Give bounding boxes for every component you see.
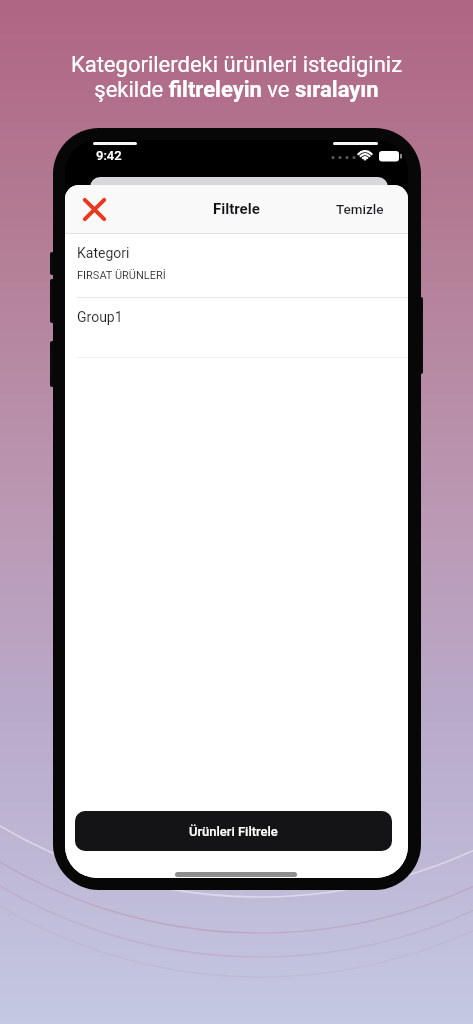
staticText: Temizle	[336, 201, 384, 217]
staticText: Kategorilerdeki ürünleri istediginiz şek…	[0, 52, 473, 103]
button[interactable]: Temizle	[336, 201, 384, 217]
staticText: Ürünleri Filtrele	[189, 824, 278, 839]
staticText: Kategori	[77, 245, 130, 261]
button[interactable]: Group1	[65, 298, 408, 357]
button[interactable]	[76, 191, 112, 227]
staticText: Filtrele	[213, 200, 260, 218]
staticText: Group1	[77, 309, 123, 325]
staticText: 9:42	[96, 148, 122, 163]
button[interactable]: Ürünleri Filtrele	[75, 811, 392, 851]
button[interactable]: Kategori	[65, 234, 408, 297]
staticText: FIRSAT ÜRÜNLERİ	[77, 269, 166, 282]
